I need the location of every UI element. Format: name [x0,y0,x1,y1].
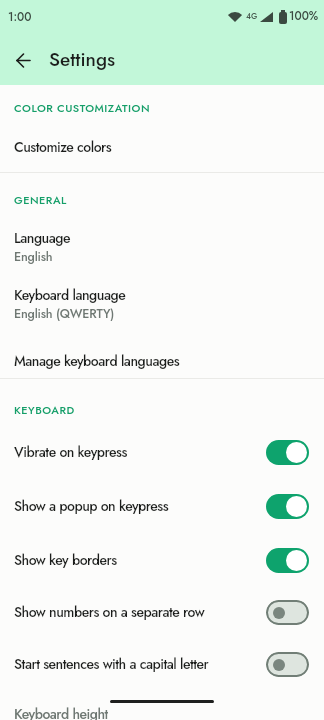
button[interactable]: Customize colors [0,121,324,173]
staticText: Vibrate on keypress [14,442,127,462]
button[interactable]: Start sentences with a capital letter [0,638,324,690]
staticText: Start sentences with a capital letter [14,654,209,674]
staticText: English [14,248,53,266]
button[interactable]: Keyboard language [0,275,324,332]
staticText: Keyboard height [14,704,108,720]
staticText: Keyboard language [14,285,126,305]
button[interactable] [11,48,35,72]
staticText: Show key borders [14,550,117,570]
staticText: GENERAL [14,192,67,208]
button[interactable]: Show a popup on keypress [0,480,324,532]
staticText: Language [14,228,71,248]
button[interactable]: Vibrate on keypress [0,426,324,478]
button[interactable]: Language [0,218,324,275]
staticText: Settings [49,46,116,73]
button[interactable]: Show key borders [0,534,324,586]
staticText: COLOR CUSTOMIZATION [14,100,150,116]
staticText: Show numbers on a separate row [14,602,205,622]
staticText: English (QWERTY) [14,305,115,323]
staticText: 1:00 [8,9,32,26]
staticText: Manage keyboard languages [14,351,180,371]
staticText: Customize colors [14,137,112,157]
staticText: 100% [289,8,319,25]
staticText: 4G [246,10,258,22]
staticText: KEYBOARD [14,402,75,418]
button[interactable]: Show numbers on a separate row [0,586,324,638]
staticText: Show a popup on keypress [14,496,169,516]
button[interactable]: Manage keyboard languages [0,335,324,387]
